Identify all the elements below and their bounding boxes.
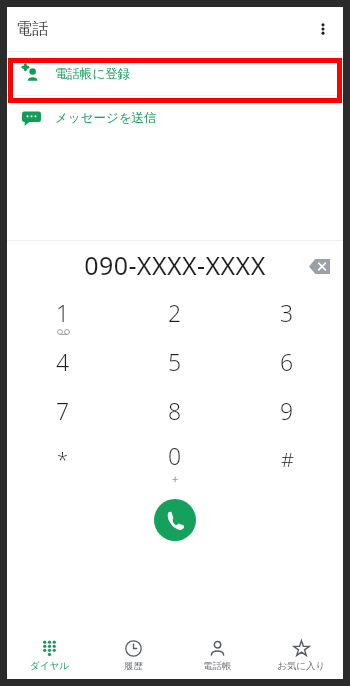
staticText: 090-XXXX-XXXX xyxy=(84,248,266,282)
button[interactable]: 1 xyxy=(7,291,119,340)
staticText: 1 xyxy=(56,297,70,328)
button[interactable]: # xyxy=(231,438,343,487)
staticText: 電話帳に登録 xyxy=(55,66,131,82)
button[interactable]: 電話帳 xyxy=(175,633,259,679)
staticText: * xyxy=(57,446,69,473)
button[interactable]: 9 xyxy=(231,389,343,438)
button[interactable]: 5 xyxy=(119,340,231,389)
button[interactable]: More options xyxy=(303,9,343,49)
staticText: 2 xyxy=(168,297,182,328)
button[interactable]: 3 xyxy=(231,291,343,340)
staticText: 0 xyxy=(168,440,182,471)
button[interactable]: 4 xyxy=(7,340,119,389)
button[interactable]: ダイヤル xyxy=(7,633,91,679)
button[interactable]: お気に入り xyxy=(259,633,343,679)
staticText: 3 xyxy=(280,297,294,328)
button[interactable]: メッセージを送信 xyxy=(7,96,343,139)
staticText: 6 xyxy=(280,346,294,377)
staticText: + xyxy=(172,471,179,486)
button[interactable]: 7 xyxy=(7,389,119,438)
button[interactable]: 履歴 xyxy=(91,633,175,679)
staticText: 履歴 xyxy=(124,660,143,672)
staticText: 4 xyxy=(56,346,70,377)
button[interactable]: Call xyxy=(154,499,196,541)
staticText: 電話帳 xyxy=(203,660,232,672)
button[interactable]: 6 xyxy=(231,340,343,389)
staticText: # xyxy=(281,446,294,473)
staticText: 9 xyxy=(280,395,294,426)
staticText: 7 xyxy=(56,395,70,426)
button[interactable]: 0 xyxy=(119,438,231,487)
button[interactable]: 電話帳に登録 xyxy=(7,52,343,95)
button[interactable]: Backspace xyxy=(299,246,339,286)
staticText: 8 xyxy=(168,395,182,426)
button[interactable]: 8 xyxy=(119,389,231,438)
staticText: 電話 xyxy=(16,19,48,39)
staticText: メッセージを送信 xyxy=(55,110,157,126)
button[interactable]: * xyxy=(7,438,119,487)
button[interactable]: 2 xyxy=(119,291,231,340)
staticText: 5 xyxy=(168,346,182,377)
staticText: お気に入り xyxy=(277,660,326,672)
staticText: ダイヤル xyxy=(30,660,69,672)
